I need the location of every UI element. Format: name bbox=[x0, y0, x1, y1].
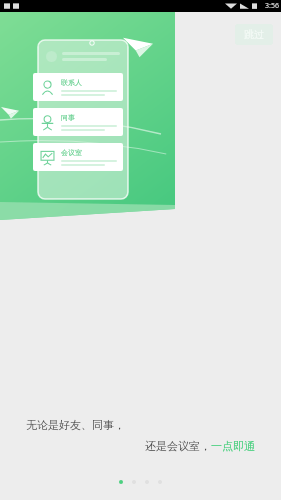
button[interactable]: 联系人 bbox=[33, 73, 123, 101]
staticText: 会议室 bbox=[61, 148, 82, 157]
button[interactable]: 同事 bbox=[33, 108, 123, 136]
button[interactable]: Page 1 bbox=[119, 480, 123, 484]
staticText: 无论是好友、同事， bbox=[26, 418, 125, 432]
button[interactable]: 跳过 bbox=[235, 24, 273, 45]
staticText: 联系人 bbox=[61, 78, 82, 87]
staticText: 跳过 bbox=[244, 28, 264, 41]
staticText: 一点即通 bbox=[211, 439, 255, 453]
staticText: 还是会议室， bbox=[145, 439, 211, 453]
button[interactable]: Page 2 bbox=[132, 480, 136, 484]
staticText: 同事 bbox=[61, 113, 75, 122]
button[interactable]: 会议室 bbox=[33, 143, 123, 171]
staticText: 3:56 bbox=[265, 1, 279, 11]
button[interactable]: Page 3 bbox=[145, 480, 149, 484]
button[interactable]: Page 4 bbox=[158, 480, 162, 484]
